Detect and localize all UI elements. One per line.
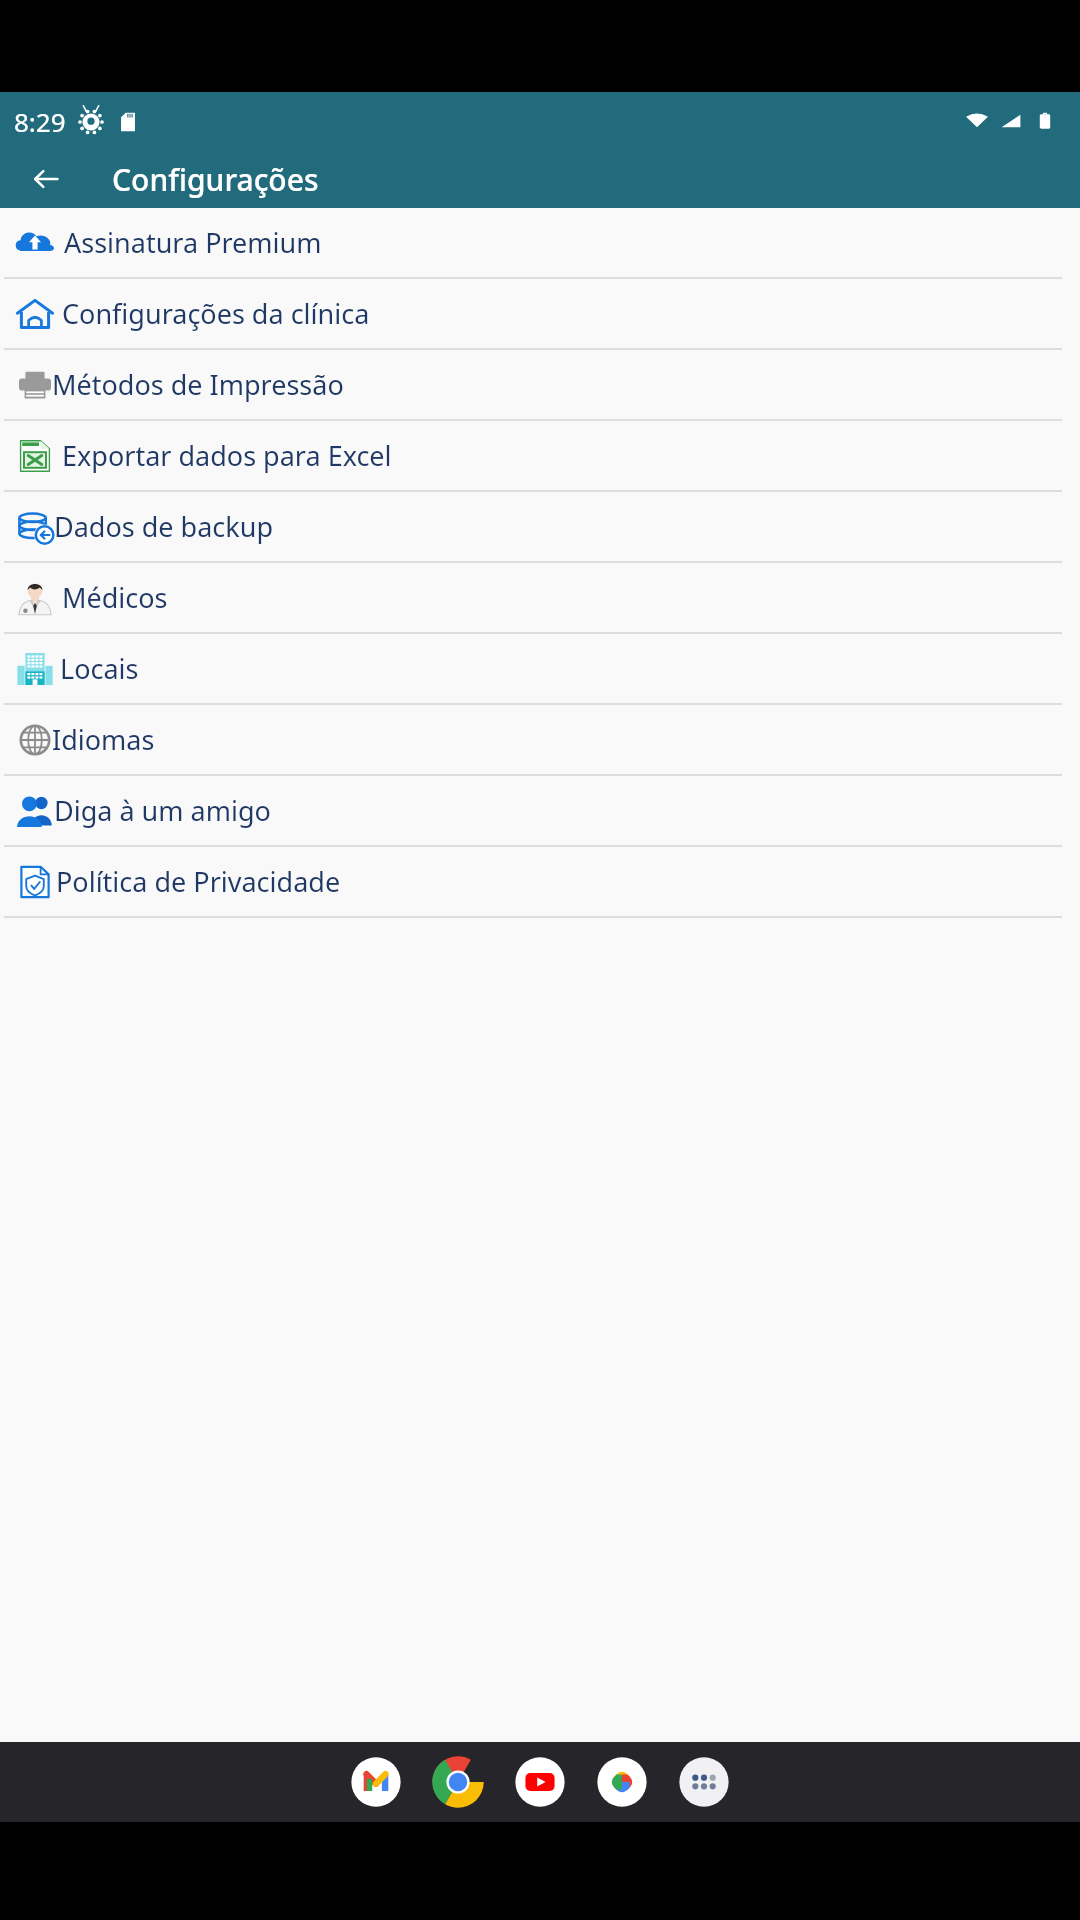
staticText: Configurações [112, 159, 319, 200]
staticText: Assinatura Premium [64, 224, 322, 261]
button[interactable]: Assinatura Premium [0, 208, 1080, 279]
button[interactable]: Locais [0, 634, 1080, 705]
staticText: Exportar dados para Excel [62, 437, 392, 474]
button[interactable]: Política de Privacidade [0, 847, 1080, 918]
button[interactable]: All apps [676, 1754, 732, 1810]
staticText: 8:29 [14, 104, 66, 139]
staticText: Dados de backup [54, 508, 274, 545]
staticText: Métodos de Impressão [52, 366, 344, 403]
staticText: Política de Privacidade [56, 863, 341, 900]
staticText: Idiomas [52, 721, 155, 758]
button[interactable]: Exportar dados para Excel [0, 421, 1080, 492]
button[interactable]: Google Photos [594, 1754, 650, 1810]
staticText: Diga à um amigo [54, 792, 271, 829]
button[interactable]: Configurações da clínica [0, 279, 1080, 350]
button[interactable]: YouTube [512, 1754, 568, 1810]
button[interactable]: Métodos de Impressão [0, 350, 1080, 421]
button[interactable]: Back [24, 157, 68, 201]
button[interactable]: Chrome [430, 1754, 486, 1810]
button[interactable]: Idiomas [0, 705, 1080, 776]
button[interactable]: Diga à um amigo [0, 776, 1080, 847]
staticText: Médicos [62, 579, 168, 616]
button[interactable]: Dados de backup [0, 492, 1080, 563]
button[interactable]: Médicos [0, 563, 1080, 634]
staticText: Locais [60, 650, 139, 687]
staticText: Configurações da clínica [62, 295, 370, 332]
button[interactable]: Gmail [348, 1754, 404, 1810]
